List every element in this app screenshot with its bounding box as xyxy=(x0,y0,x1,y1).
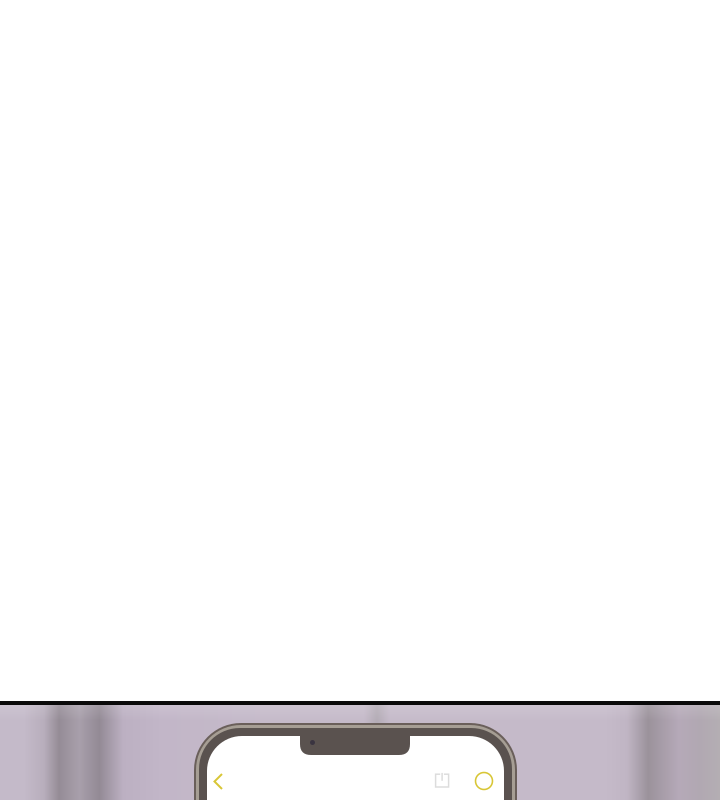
button[interactable]: Tabs xyxy=(472,769,496,793)
button[interactable]: Share xyxy=(430,769,454,793)
button[interactable]: Back xyxy=(206,769,230,793)
